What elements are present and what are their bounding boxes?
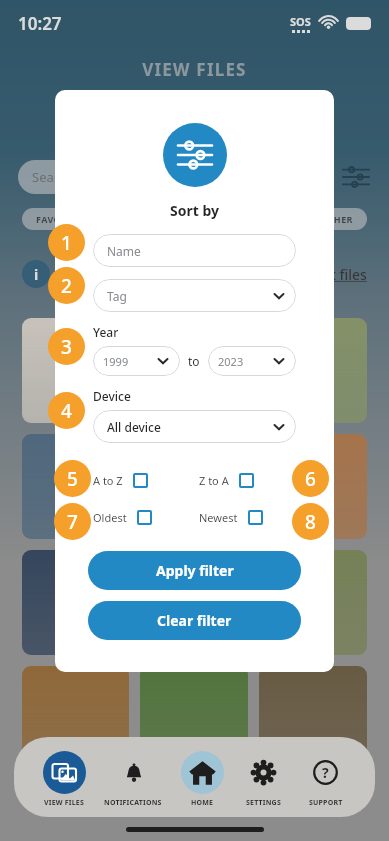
button[interactable]: A to Z bbox=[93, 473, 189, 488]
button[interactable]: SUPPORT bbox=[304, 747, 347, 808]
staticText: 1 bbox=[61, 230, 72, 256]
button[interactable]: NOTIFICATIONS bbox=[104, 747, 162, 808]
button[interactable]: Oldest bbox=[93, 510, 189, 525]
button[interactable]: 2023 bbox=[208, 346, 296, 376]
staticText: i bbox=[34, 265, 39, 284]
staticText: 3 bbox=[61, 334, 72, 360]
button[interactable]: All device bbox=[93, 410, 296, 443]
staticText: HOME bbox=[191, 798, 214, 808]
staticText: Search bbox=[32, 168, 74, 186]
staticText: Year bbox=[93, 324, 119, 340]
button[interactable]: Newest bbox=[199, 510, 296, 525]
staticText: 4 bbox=[61, 398, 72, 424]
staticText: Sort by bbox=[55, 201, 334, 220]
staticText: 2 bbox=[61, 273, 72, 299]
staticText: NOTIFICATIONS bbox=[104, 798, 162, 808]
staticText: VIEW FILES bbox=[44, 798, 85, 808]
staticText: Device bbox=[93, 388, 131, 404]
button[interactable]: Clear filter bbox=[88, 601, 301, 640]
staticText: ? bbox=[322, 763, 329, 782]
staticText: 1999 bbox=[103, 354, 129, 369]
staticText: FAVOURITES bbox=[36, 213, 95, 225]
staticText: A to Z bbox=[93, 473, 123, 488]
staticText: Z to A bbox=[199, 473, 229, 488]
staticText: Tag bbox=[107, 288, 127, 304]
staticText: Apply filter bbox=[156, 561, 234, 580]
staticText: All device bbox=[107, 419, 161, 435]
staticText: 8 bbox=[305, 509, 316, 535]
staticText: 6 bbox=[305, 466, 316, 492]
button[interactable]: Tag bbox=[93, 279, 296, 312]
button[interactable]: HOME bbox=[181, 747, 224, 808]
staticText: SETTINGS bbox=[246, 798, 281, 808]
button[interactable]: Apply filter bbox=[88, 551, 301, 590]
staticText: 5 bbox=[67, 466, 78, 492]
button[interactable]: VIEW FILES bbox=[43, 747, 86, 808]
button[interactable]: Name bbox=[93, 234, 296, 267]
staticText: OTHER bbox=[321, 213, 353, 225]
staticText: SOS bbox=[290, 14, 311, 29]
staticText: 2023 bbox=[218, 354, 244, 369]
staticText: Clear filter bbox=[157, 611, 232, 630]
staticText: Oldest bbox=[93, 510, 127, 525]
button[interactable]: Z to A bbox=[199, 473, 296, 488]
staticText: Newest bbox=[199, 510, 238, 525]
staticText: SUPPORT bbox=[309, 798, 343, 808]
button[interactable]: SETTINGS bbox=[242, 747, 285, 808]
staticText: Select files bbox=[296, 265, 367, 284]
staticText: VIEW FILES bbox=[0, 58, 389, 81]
staticText: to bbox=[188, 353, 200, 369]
button[interactable]: 1999 bbox=[93, 346, 180, 376]
staticText: 7 bbox=[67, 509, 78, 535]
staticText: 10:27 bbox=[18, 12, 62, 35]
staticText: Name bbox=[107, 243, 141, 259]
